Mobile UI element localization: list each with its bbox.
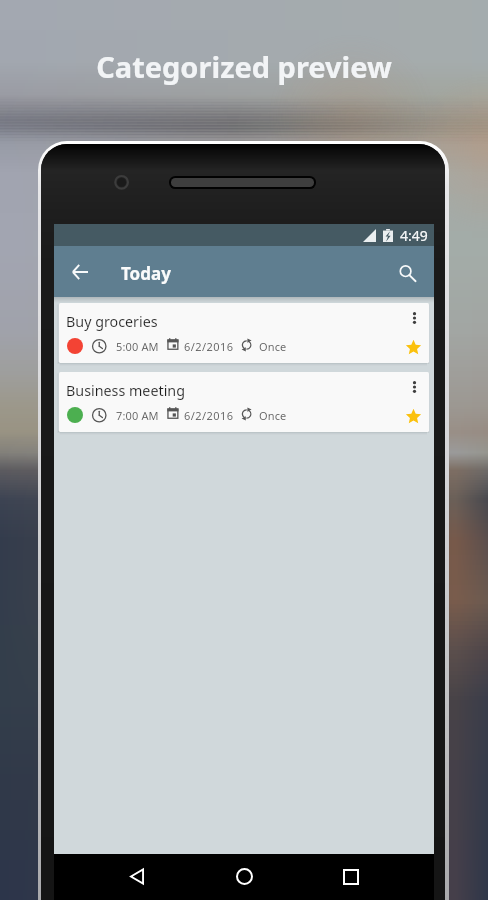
button[interactable]: Buy groceries [59, 303, 429, 363]
staticText: 6/2/2016 [184, 339, 234, 354]
button[interactable]: Favourite [399, 333, 427, 361]
staticText: 5:00 AM [116, 339, 159, 354]
button[interactable]: Favourite [399, 402, 427, 430]
button[interactable]: More options [400, 305, 428, 331]
staticText: 4:49 [400, 226, 428, 245]
staticText: Today [121, 262, 171, 285]
button[interactable]: Back [56, 246, 104, 297]
staticText: 6/2/2016 [184, 408, 234, 423]
staticText: 7:00 AM [116, 408, 159, 423]
staticText: Business meeting [66, 381, 185, 400]
button[interactable]: Back [113, 853, 161, 900]
staticText: Once [259, 408, 287, 423]
staticText: Categorized preview [0, 47, 488, 86]
button[interactable]: Search [384, 250, 432, 298]
button[interactable]: More options [400, 374, 428, 400]
button[interactable]: Recents [327, 853, 375, 900]
button[interactable]: Home [220, 853, 268, 900]
staticText: Once [259, 339, 287, 354]
button[interactable]: Business meeting [59, 372, 429, 432]
staticText: Buy groceries [66, 312, 158, 331]
